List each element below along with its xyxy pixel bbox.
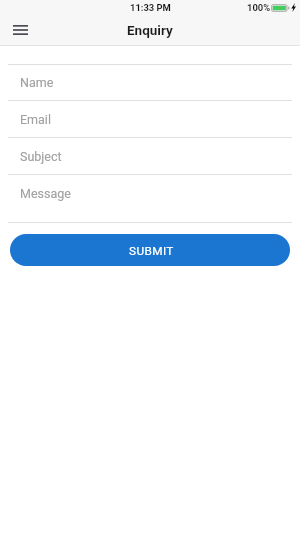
staticText: 100% [247, 2, 271, 13]
button[interactable]: Name [0, 65, 300, 100]
button[interactable]: Message [0, 175, 300, 222]
staticText: 11:33 PM [130, 2, 171, 13]
button[interactable]: SUBMIT [10, 234, 290, 266]
button[interactable]: Open navigation menu [8, 15, 33, 45]
staticText: Subject [20, 149, 62, 164]
staticText: Name [20, 75, 54, 90]
staticText: SUBMIT [129, 244, 174, 258]
staticText: Message [20, 186, 71, 201]
button[interactable]: Subject [0, 138, 300, 174]
staticText: Email [20, 112, 51, 127]
staticText: Enquiry [127, 22, 173, 38]
button[interactable]: Email [0, 101, 300, 137]
